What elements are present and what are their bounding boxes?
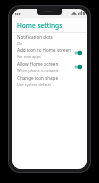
staticText: When phone is rotated — [17, 68, 58, 73]
staticText: Change icon shape — [17, 75, 59, 81]
button[interactable]: Allow Home screen rotation — [12, 60, 87, 74]
staticText: Allow Home screen rotation — [17, 61, 73, 67]
staticText: On — [17, 41, 23, 46]
button[interactable]: Notification dots — [12, 33, 87, 46]
staticText: Add icon to Home screen — [17, 47, 72, 53]
staticText: Notification dots — [17, 34, 53, 40]
staticText: Home settings — [17, 21, 63, 30]
staticText: For new apps — [17, 54, 41, 59]
button[interactable]: Allow Home screen rotation — [73, 63, 83, 71]
button[interactable]: Change icon shape — [12, 74, 87, 87]
button[interactable]: Add icon to Home screen — [12, 46, 87, 60]
button[interactable]: Add icon to Home screen — [73, 49, 83, 57]
staticText: Use system default — [17, 82, 51, 87]
